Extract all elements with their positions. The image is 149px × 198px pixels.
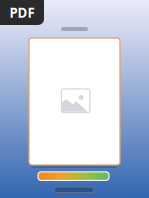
button[interactable]	[37, 171, 109, 181]
button[interactable]: PDF	[0, 0, 44, 25]
staticText: PDF	[9, 4, 34, 21]
